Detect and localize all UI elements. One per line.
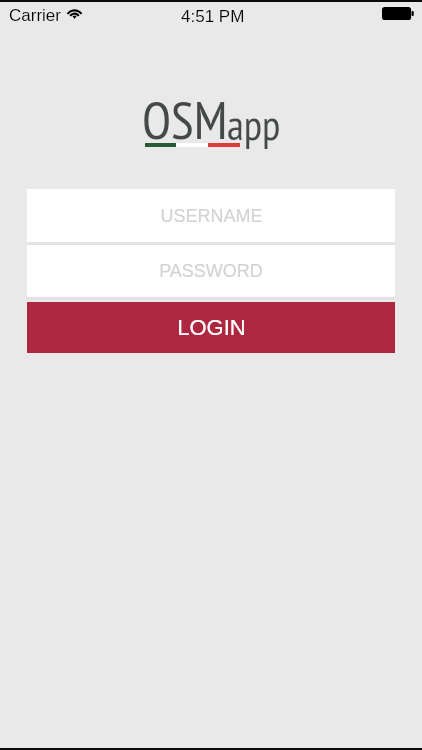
staticText: Carrier <box>9 6 61 25</box>
other: Battery <box>382 7 414 20</box>
staticText: PASSWORD <box>159 261 263 281</box>
staticText: OSM <box>142 85 228 154</box>
other: Wi-Fi <box>66 7 83 19</box>
button[interactable]: USERNAME <box>27 189 395 242</box>
staticText: app <box>227 97 281 151</box>
staticText: LOGIN <box>177 315 246 340</box>
staticText: USERNAME <box>160 206 263 226</box>
button[interactable]: LOGIN <box>27 302 395 353</box>
button[interactable]: PASSWORD <box>27 245 395 297</box>
staticText: 4:51 PM <box>181 7 245 26</box>
